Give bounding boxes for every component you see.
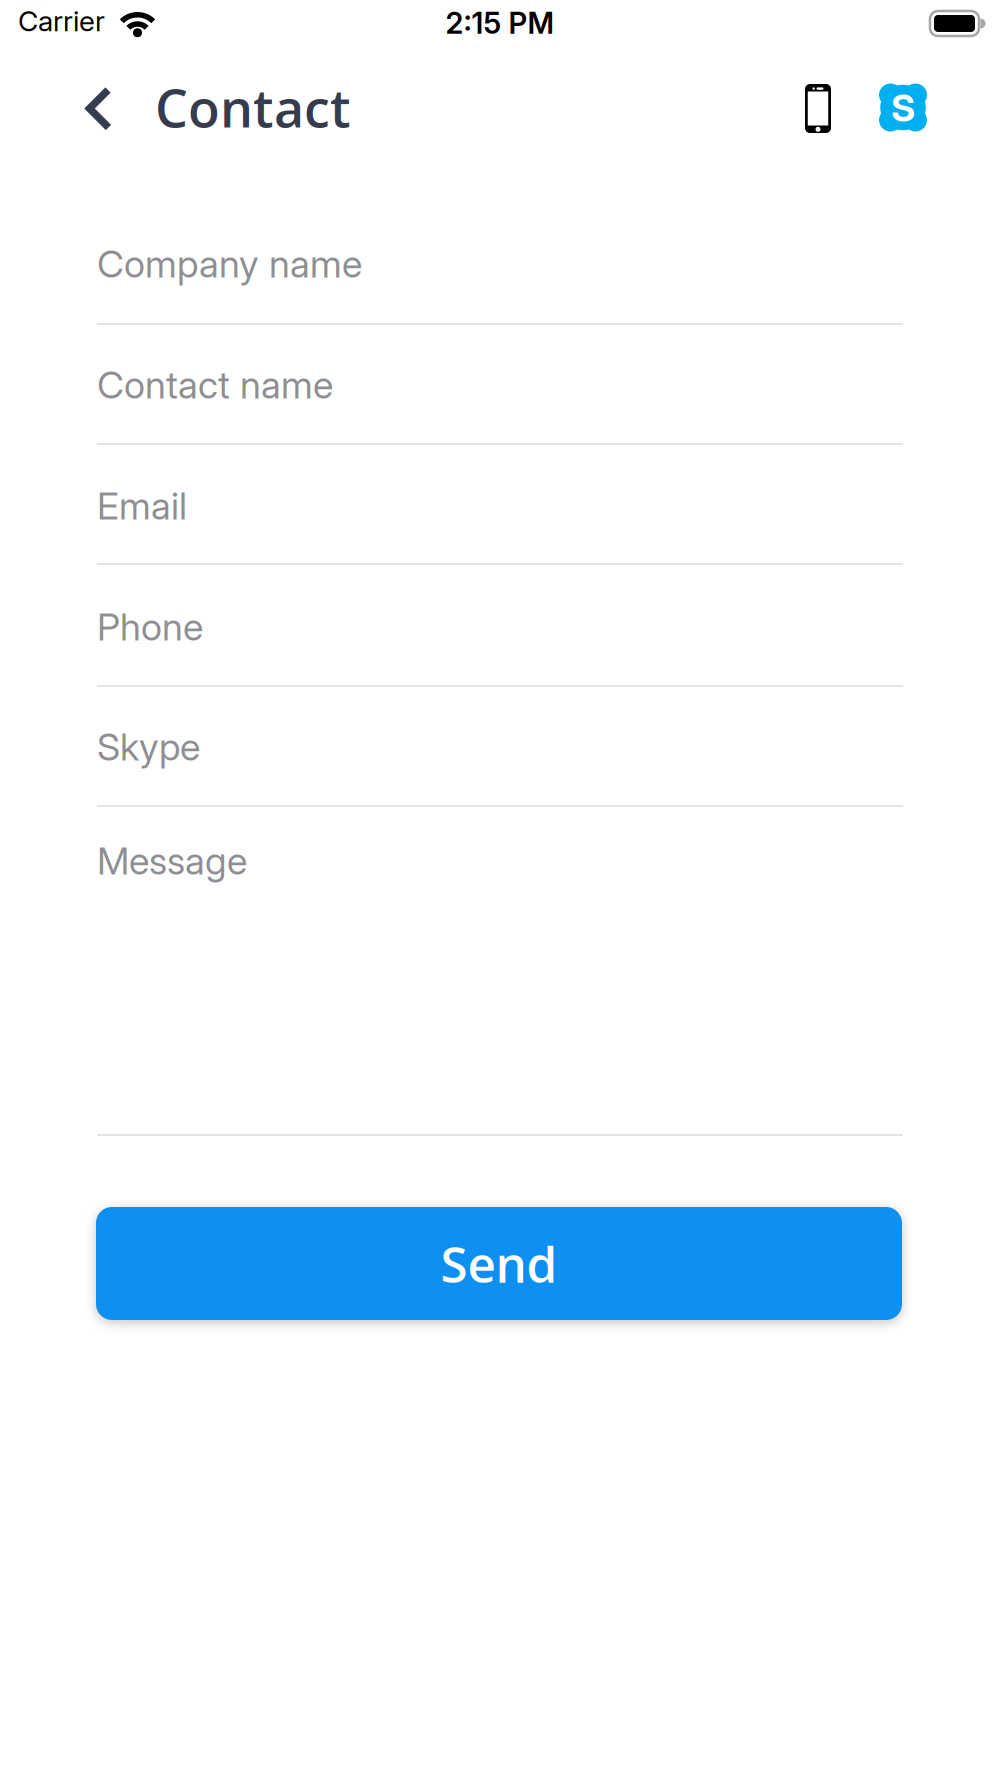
staticText: 2:15 PM	[445, 5, 554, 41]
staticText: Phone	[97, 604, 203, 650]
staticText: Email	[97, 483, 187, 529]
button[interactable]: Call	[805, 84, 831, 133]
button[interactable]: Skype	[879, 84, 927, 132]
staticText: Skype	[97, 724, 200, 770]
staticText: Contact name	[97, 362, 333, 408]
staticText: Contact	[155, 72, 351, 143]
staticText: S	[891, 85, 915, 131]
staticText: Send	[440, 1230, 557, 1297]
staticText: Carrier	[18, 4, 105, 38]
staticText: Company name	[97, 241, 362, 287]
staticText: Message	[97, 838, 247, 884]
button[interactable]: Send	[96, 1207, 902, 1320]
button[interactable]: Back	[85, 86, 113, 132]
